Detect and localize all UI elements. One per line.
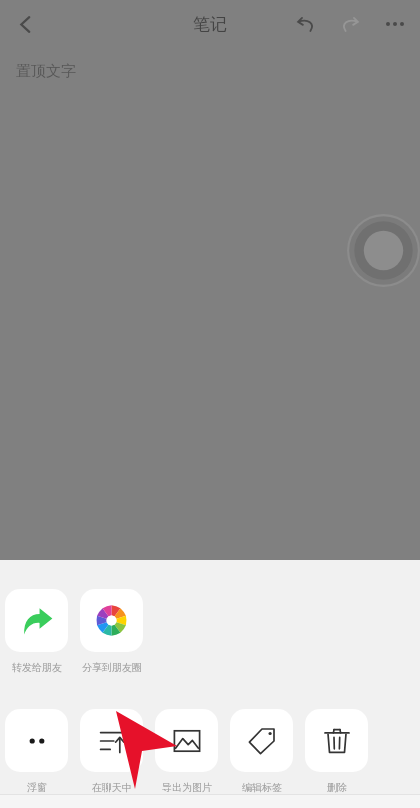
- button[interactable]: 分享到朋友圈: [80, 589, 143, 674]
- staticText: 删除: [327, 781, 347, 794]
- button[interactable]: Undo: [284, 2, 328, 46]
- button[interactable]: Back: [2, 1, 48, 47]
- button[interactable]: 在聊天中: [80, 709, 143, 794]
- button[interactable]: 转发给朋友: [5, 589, 68, 674]
- button[interactable]: 编辑标签: [230, 709, 293, 794]
- staticText: 编辑标签: [242, 781, 282, 794]
- button[interactable]: Floating handle: [347, 214, 420, 287]
- button[interactable]: More options: [372, 1, 418, 47]
- staticText: 转发给朋友: [12, 661, 62, 674]
- staticText: 置顶文字: [16, 62, 76, 81]
- staticText: 导出为图片: [162, 781, 212, 794]
- staticText: 浮窗: [27, 781, 47, 794]
- staticText: 在聊天中: [92, 781, 132, 794]
- staticText: 分享到朋友圈: [82, 661, 142, 674]
- button[interactable]: 删除: [305, 709, 368, 794]
- button[interactable]: 导出为图片: [155, 709, 218, 794]
- staticText: 笔记: [193, 14, 227, 35]
- button[interactable]: 浮窗: [5, 709, 68, 794]
- button[interactable]: Redo: [328, 2, 372, 46]
